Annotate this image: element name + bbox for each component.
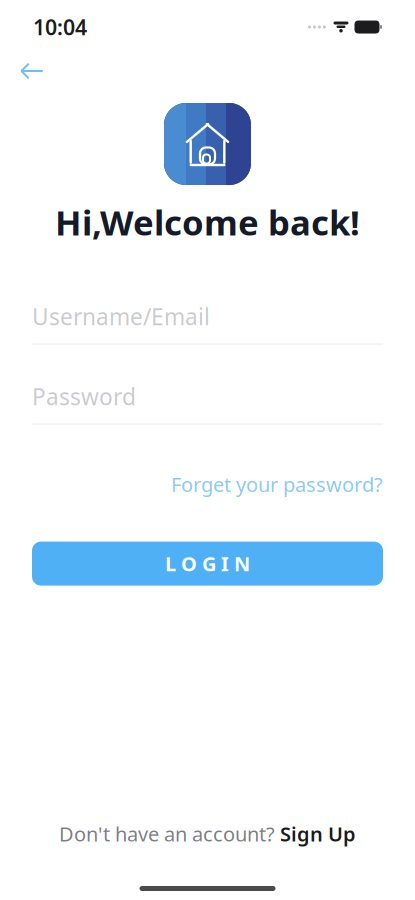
button[interactable]: Forget your password? <box>171 465 383 504</box>
staticText: Sign Up <box>280 820 356 847</box>
staticText: L O G I N <box>165 550 250 577</box>
staticText: Forget your password? <box>171 471 383 498</box>
staticText: Password <box>32 381 136 412</box>
staticText: Username/Email <box>32 301 210 332</box>
staticText: Hi,Welcome back! <box>55 199 360 245</box>
button[interactable]: L O G I N <box>32 542 383 586</box>
button[interactable]: Back <box>10 54 54 88</box>
staticText: 10:04 <box>33 13 87 41</box>
staticText: Don't have an account? <box>59 820 275 847</box>
button[interactable]: Don't have an account? <box>59 814 356 853</box>
